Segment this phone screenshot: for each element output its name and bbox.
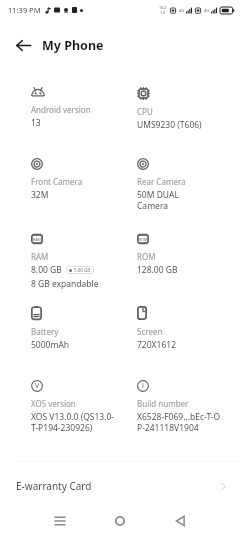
- staticText: Rear Camera: [137, 176, 186, 187]
- staticText: E-warranty Card: [16, 479, 92, 493]
- staticText: Build number: [137, 398, 189, 409]
- staticText: Screen: [137, 326, 163, 337]
- staticText: XOS version: [31, 398, 76, 409]
- staticText: 128.00 GB: [137, 264, 178, 276]
- staticText: 8 GB expandable: [31, 278, 99, 290]
- staticText: 8.00 GB: [31, 264, 62, 276]
- staticText: i: [142, 381, 144, 391]
- staticText: XOS V13.0.0 (QS13.0- T-P194-230926): [31, 411, 115, 433]
- button[interactable]: Recents: [45, 506, 75, 536]
- staticText: 720X1612: [137, 339, 177, 351]
- staticText: Front Camera: [31, 176, 83, 187]
- staticText: RAM: [33, 237, 41, 242]
- staticText: 5000mAh: [31, 339, 70, 351]
- staticText: 50M DUAL Camera: [137, 189, 179, 211]
- button[interactable]: E-warranty Card: [0, 464, 240, 508]
- staticText: 4G: [204, 8, 210, 13]
- button[interactable]: Home: [105, 506, 135, 536]
- staticText: My Phone: [42, 37, 104, 54]
- staticText: 32M: [31, 189, 49, 201]
- staticText: Battery: [31, 326, 59, 337]
- staticText: CPU: [137, 106, 153, 117]
- button[interactable]: Back: [165, 506, 195, 536]
- staticText: ROM: [137, 251, 156, 262]
- staticText: X6528-F069...bEc-T-O P-241118V1904: [137, 411, 221, 433]
- staticText: 10.2: [159, 5, 167, 10]
- staticText: V: [35, 381, 40, 391]
- button[interactable]: Back: [10, 32, 36, 58]
- staticText: 4G: [179, 8, 185, 13]
- staticText: Android version: [31, 104, 91, 115]
- staticText: 13: [31, 117, 41, 129]
- staticText: 1.6: [160, 10, 166, 15]
- staticText: 11:39 PM: [8, 5, 41, 15]
- staticText: ROM: [139, 237, 148, 242]
- staticText: UMS9230 (T606): [137, 119, 202, 131]
- staticText: 5.00 GB: [74, 267, 91, 273]
- staticText: RAM: [31, 251, 49, 262]
